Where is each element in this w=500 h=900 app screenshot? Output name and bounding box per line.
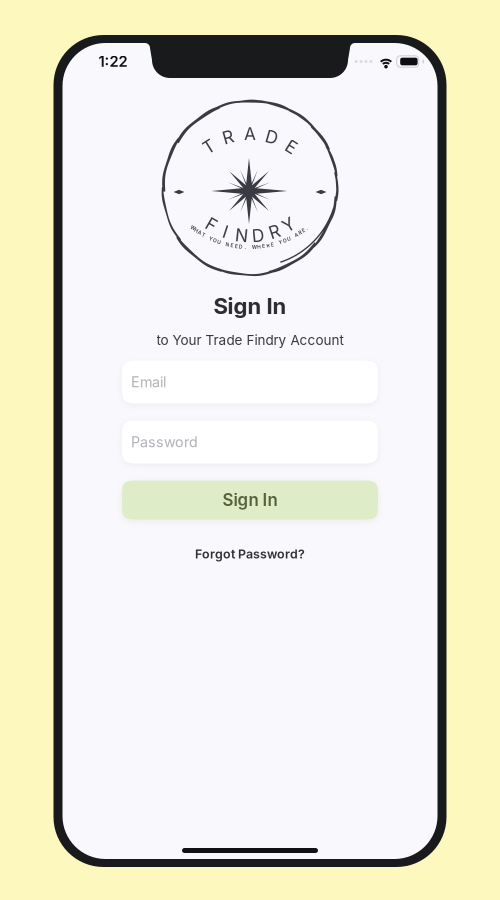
staticText: O	[283, 238, 287, 244]
staticText: I	[223, 221, 228, 242]
staticText: to Your Trade Findry Account	[156, 332, 343, 348]
staticText: H	[194, 227, 198, 233]
staticText: R	[269, 221, 280, 242]
staticText: T	[203, 136, 214, 157]
staticText: A	[198, 230, 202, 236]
staticText: R	[299, 230, 302, 236]
staticText: .	[306, 225, 308, 231]
staticText: D	[252, 225, 265, 246]
staticText: E	[302, 227, 305, 233]
staticText: R	[266, 243, 269, 249]
staticText: R	[223, 127, 234, 148]
staticText: W	[191, 225, 196, 231]
button[interactable]: Email	[122, 360, 378, 403]
staticText: Sign In	[222, 490, 277, 510]
staticText: Password	[131, 433, 198, 451]
button[interactable]: Password	[122, 420, 378, 463]
staticText: A	[244, 123, 256, 144]
button[interactable]: Sign In	[122, 480, 378, 519]
staticText: .	[244, 244, 246, 250]
staticText: Y	[279, 239, 283, 245]
staticText: E	[286, 136, 296, 157]
staticText: Email	[131, 373, 166, 391]
staticText: N	[226, 242, 230, 248]
staticText: Sign In	[213, 293, 286, 319]
staticText: E	[235, 243, 238, 249]
staticText: N	[235, 225, 248, 246]
staticText: F	[206, 214, 216, 235]
staticText: D	[265, 127, 278, 148]
staticText: 1:22	[98, 53, 127, 70]
staticText: H	[257, 244, 261, 250]
staticText: W	[252, 244, 257, 250]
staticText: E	[271, 242, 274, 248]
staticText: A	[295, 232, 299, 238]
staticText: E	[262, 243, 265, 249]
staticText: D	[239, 244, 243, 250]
staticText: O	[213, 238, 217, 244]
staticText: T	[202, 232, 205, 238]
staticText: Forgot Password?	[195, 546, 305, 561]
staticText: Y	[209, 236, 213, 242]
staticText: U	[217, 239, 221, 245]
staticText: Y	[283, 214, 295, 235]
button[interactable]: Forgot Password?	[191, 542, 309, 565]
staticText: U	[287, 236, 291, 242]
staticText: E	[230, 243, 233, 249]
